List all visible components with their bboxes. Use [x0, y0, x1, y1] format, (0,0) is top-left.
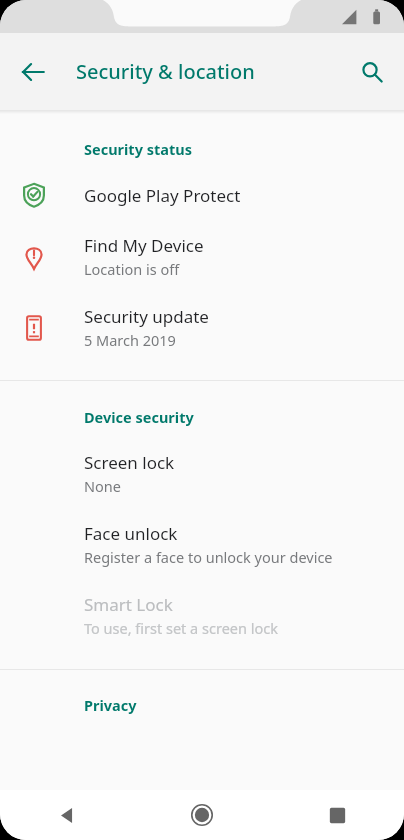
staticText: Security status: [84, 139, 192, 159]
button[interactable]: Find My Device: [0, 221, 404, 292]
staticText: Security & location: [76, 58, 255, 85]
button[interactable]: Search: [348, 48, 396, 96]
staticText: Security update: [84, 305, 209, 328]
staticText: Privacy: [84, 695, 137, 715]
staticText: 5 March 2019: [84, 330, 176, 350]
staticText: To use, first set a screen lock: [84, 618, 278, 638]
staticText: None: [84, 476, 121, 496]
button[interactable]: Security update: [0, 292, 404, 363]
button[interactable]: Google Play Protect: [0, 169, 404, 221]
staticText: Google Play Protect: [84, 184, 241, 207]
staticText: Location is off: [84, 259, 180, 279]
button[interactable]: Recent apps: [313, 791, 361, 839]
button[interactable]: Back: [43, 791, 91, 839]
staticText: Device security: [84, 407, 194, 427]
staticText: Screen lock: [84, 451, 175, 474]
staticText: Register a face to unlock your device: [84, 547, 333, 567]
staticText: Face unlock: [84, 522, 178, 545]
staticText: Find My Device: [84, 234, 204, 257]
staticText: Smart Lock: [84, 593, 173, 616]
button[interactable]: Back: [9, 48, 57, 96]
button[interactable]: Home: [178, 791, 226, 839]
button[interactable]: Screen lock: [0, 438, 404, 509]
button[interactable]: Face unlock: [0, 509, 404, 580]
button[interactable]: Smart Lock: [0, 580, 404, 651]
